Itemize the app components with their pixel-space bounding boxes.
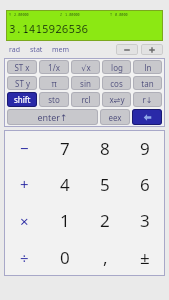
staticText: 0.0000 bbox=[115, 12, 128, 17]
button[interactable]: log bbox=[102, 60, 131, 74]
button[interactable]: sto bbox=[39, 92, 69, 107]
button[interactable]: sin bbox=[71, 76, 100, 90]
button[interactable]: Decrease bbox=[116, 44, 138, 55]
button[interactable]: 2 bbox=[85, 202, 125, 239]
button[interactable]: r↓ bbox=[133, 92, 162, 107]
button[interactable]: 4 bbox=[45, 166, 85, 202]
button[interactable]: stat bbox=[27, 43, 46, 57]
button[interactable]: x⇌y bbox=[102, 92, 131, 107]
staticText: 3.1415926536 bbox=[9, 21, 89, 36]
staticText: rcl bbox=[81, 94, 91, 105]
staticText: ± bbox=[140, 246, 150, 269]
staticText: cos bbox=[110, 78, 123, 89]
staticText: eex bbox=[108, 112, 122, 123]
staticText: 1.00000 bbox=[65, 12, 80, 17]
button[interactable]: − bbox=[4, 130, 45, 166]
button[interactable]: cos bbox=[102, 76, 131, 90]
button[interactable]: ÷ bbox=[4, 239, 45, 276]
staticText: 3 bbox=[140, 209, 150, 232]
staticText: tan bbox=[141, 78, 154, 89]
button[interactable]: π bbox=[39, 76, 69, 90]
staticText: , bbox=[103, 246, 108, 269]
button[interactable]: 5 bbox=[85, 166, 125, 202]
staticText: sto bbox=[48, 94, 60, 105]
button[interactable]: eex bbox=[100, 109, 130, 125]
button[interactable]: 7 bbox=[45, 130, 85, 166]
button[interactable]: enter↑ bbox=[7, 109, 98, 125]
staticText: x⇌y bbox=[109, 94, 125, 105]
staticText: 9 bbox=[140, 137, 150, 160]
button[interactable]: 3 bbox=[125, 202, 165, 239]
button[interactable]: 9 bbox=[125, 130, 165, 166]
staticText: T bbox=[110, 12, 113, 17]
staticText: √x bbox=[81, 62, 91, 73]
staticText: shift bbox=[14, 94, 31, 105]
staticText: 4 bbox=[60, 173, 70, 196]
staticText: stat bbox=[30, 45, 43, 55]
staticText: 7 bbox=[60, 137, 70, 160]
staticText: 5 bbox=[100, 173, 110, 196]
button[interactable]: ST y bbox=[7, 76, 37, 90]
button[interactable]: shift bbox=[7, 92, 37, 107]
staticText: log bbox=[111, 62, 123, 73]
staticText: rad bbox=[9, 45, 20, 55]
staticText: 1 bbox=[60, 209, 70, 232]
staticText: Z bbox=[60, 12, 63, 17]
button[interactable]: 1/x bbox=[39, 60, 69, 74]
button[interactable]: mem bbox=[49, 43, 73, 57]
staticText: 2.00000 bbox=[14, 12, 29, 17]
button[interactable]: ST x bbox=[7, 60, 37, 74]
button[interactable]: rcl bbox=[71, 92, 100, 107]
button[interactable]: 0 bbox=[45, 239, 85, 276]
staticText: 0 bbox=[60, 246, 70, 269]
button[interactable]: rad bbox=[6, 43, 23, 57]
staticText: 1/x bbox=[48, 62, 60, 73]
staticText: ST y bbox=[15, 78, 30, 89]
staticText: mem bbox=[52, 45, 70, 55]
staticText: − bbox=[20, 138, 29, 158]
staticText: Y bbox=[9, 12, 12, 17]
staticText: ÷ bbox=[20, 248, 29, 268]
button[interactable]: ln bbox=[133, 60, 162, 74]
button[interactable]: Backspace bbox=[132, 109, 162, 125]
button[interactable]: Increase bbox=[141, 44, 163, 55]
staticText: 2 bbox=[100, 209, 110, 232]
button[interactable]: , bbox=[85, 239, 125, 276]
staticText: r↓ bbox=[142, 94, 153, 105]
button[interactable]: ± bbox=[125, 239, 165, 276]
button[interactable]: + bbox=[4, 166, 45, 202]
staticText: + bbox=[20, 174, 29, 194]
staticText: × bbox=[20, 211, 29, 231]
button[interactable]: 6 bbox=[125, 166, 165, 202]
button[interactable]: × bbox=[4, 202, 45, 239]
staticText: ln bbox=[144, 62, 152, 73]
staticText: π bbox=[51, 78, 57, 89]
button[interactable]: tan bbox=[133, 76, 162, 90]
button[interactable]: √x bbox=[71, 60, 100, 74]
button[interactable]: 1 bbox=[45, 202, 85, 239]
button[interactable]: 8 bbox=[85, 130, 125, 166]
staticText: 8 bbox=[100, 137, 110, 160]
staticText: enter↑ bbox=[37, 111, 68, 123]
staticText: sin bbox=[80, 78, 91, 89]
staticText: ST x bbox=[14, 62, 30, 73]
staticText: 6 bbox=[140, 173, 150, 196]
